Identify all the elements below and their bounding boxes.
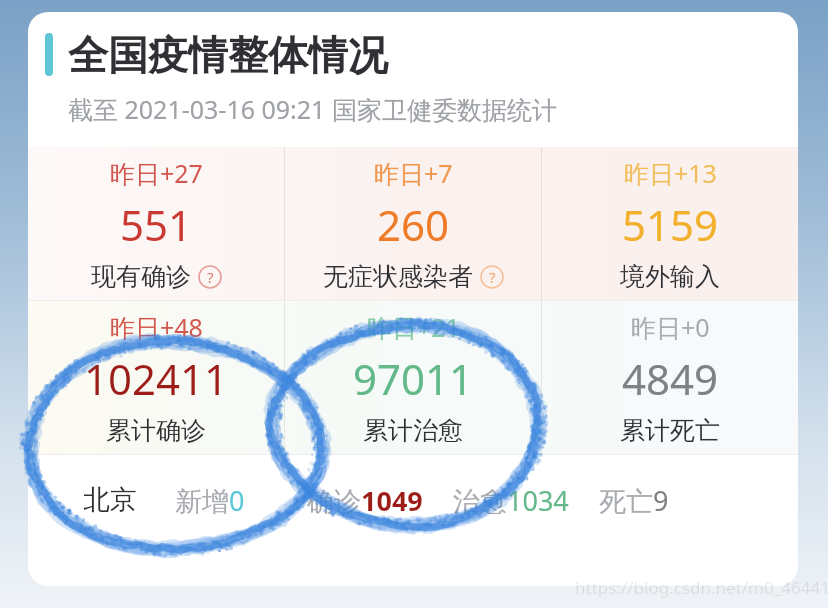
staticText: 现有确诊 [91, 261, 191, 292]
staticText: 昨日+21 [367, 310, 460, 344]
staticText: 551 [120, 196, 193, 253]
staticText: 昨日+27 [110, 156, 203, 190]
staticText: 确诊1049 [307, 482, 423, 519]
staticText: 4849 [622, 350, 719, 407]
button[interactable]: 昨日+7 [285, 147, 541, 300]
button[interactable]: 昨日+21 [285, 301, 541, 454]
staticText: 102411 [84, 350, 229, 407]
staticText: 昨日+0 [631, 310, 710, 344]
staticText: 5159 [622, 196, 719, 253]
staticText: https://blog.csdn.net/m0_46441797 [575, 576, 828, 599]
button[interactable]: 昨日+48 [28, 301, 284, 454]
button[interactable]: 昨日+27 [28, 147, 284, 300]
button[interactable]: Help about 现有确诊 [198, 265, 222, 289]
staticText: 无症状感染者 [323, 261, 473, 292]
staticText: 累计确诊 [106, 415, 206, 446]
staticText: 死亡9 [599, 482, 669, 519]
staticText: 97011 [353, 350, 474, 407]
staticText: 截至 2021-03-16 09:21 国家卫健委数据统计 [68, 92, 557, 126]
staticText: 昨日+13 [624, 156, 717, 190]
staticText: 全国疫情整体情况 [68, 30, 388, 80]
staticText: 累计治愈 [363, 415, 463, 446]
staticText: 昨日+7 [374, 156, 453, 190]
button[interactable]: 昨日+0 [542, 301, 798, 454]
staticText: ? [207, 267, 214, 287]
staticText: 260 [377, 196, 450, 253]
staticText: 累计死亡 [620, 415, 720, 446]
button[interactable]: Help about 无症状感染者 [480, 265, 504, 289]
staticText: 新增0 [175, 482, 245, 519]
button[interactable]: 北京 [28, 455, 798, 545]
staticText: 昨日+48 [110, 310, 203, 344]
staticText: 北京 [83, 483, 137, 517]
button[interactable]: 昨日+13 [542, 147, 798, 300]
staticText: ? [489, 267, 496, 287]
staticText: 境外输入 [620, 261, 720, 292]
staticText: 治愈1034 [453, 482, 569, 519]
